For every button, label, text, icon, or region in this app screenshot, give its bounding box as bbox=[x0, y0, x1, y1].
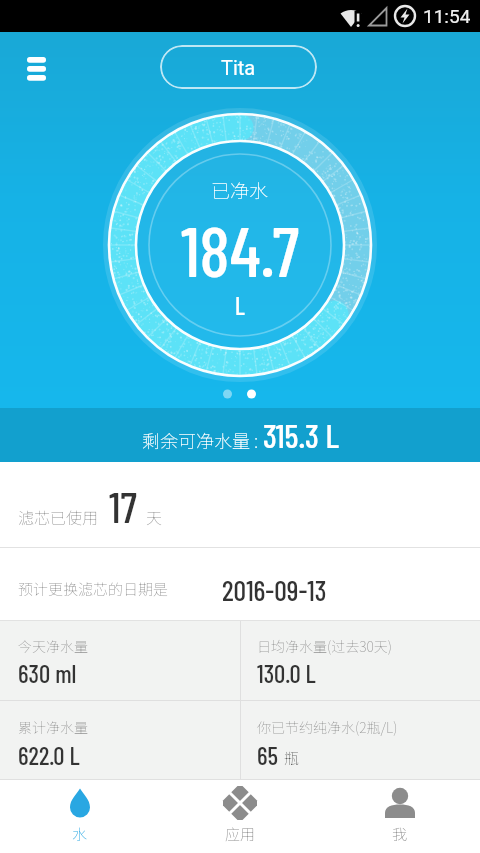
staticText: 预计更换滤芯的日期是 bbox=[18, 578, 169, 600]
button[interactable]: 水 bbox=[0, 780, 160, 853]
staticText: L bbox=[235, 291, 245, 320]
staticText: 630 ml bbox=[18, 658, 77, 688]
staticText: 累计净水量 bbox=[18, 717, 88, 737]
staticText: 11:54 bbox=[423, 5, 471, 27]
staticText: 应用 bbox=[225, 823, 256, 845]
staticText: 已净水 bbox=[211, 176, 269, 204]
button[interactable]: 应用 bbox=[160, 780, 320, 853]
staticText: 日均净水量(过去30天) bbox=[257, 636, 392, 656]
staticText: 我 bbox=[392, 823, 408, 845]
staticText: 滤芯已使用 bbox=[18, 505, 99, 528]
button[interactable]: Tita bbox=[160, 45, 317, 89]
staticText: 天 bbox=[146, 505, 163, 528]
staticText: 你已节约纯净水(2瓶/L) bbox=[257, 717, 398, 737]
staticText: 130.0 L bbox=[257, 658, 316, 688]
staticText: 17 bbox=[109, 480, 137, 532]
staticText: 622.0 L bbox=[18, 740, 80, 770]
staticText: 今天净水量 bbox=[18, 636, 88, 656]
staticText: Tita bbox=[221, 56, 256, 79]
staticText: 剩余可净水量 : bbox=[142, 427, 263, 453]
staticText: 瓶 bbox=[284, 747, 300, 769]
staticText: 184.7 bbox=[181, 207, 300, 291]
staticText: 水 bbox=[72, 823, 88, 845]
staticText: 65 bbox=[257, 740, 279, 770]
staticText: 315.3 L bbox=[263, 415, 339, 455]
button[interactable]: 我 bbox=[320, 780, 480, 853]
button[interactable] bbox=[13, 45, 59, 91]
staticText: 2016-09-13 bbox=[222, 573, 327, 607]
